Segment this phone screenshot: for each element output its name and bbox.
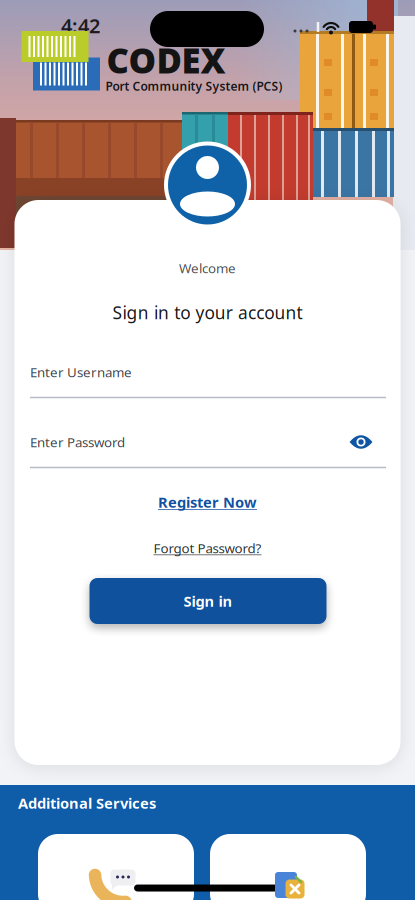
staticText: CODEX	[106, 37, 225, 83]
staticText: Register Now	[158, 492, 257, 512]
button[interactable]: Forgot Password?	[153, 539, 261, 557]
button[interactable]	[38, 834, 194, 900]
staticText: Port Community System (PCS)	[105, 78, 282, 94]
staticText: Welcome	[179, 259, 236, 277]
button[interactable]: Sign in	[89, 578, 326, 624]
button[interactable]: Enter Username	[0, 344, 415, 400]
staticText: Enter Password	[30, 433, 125, 451]
staticText: Sign in to your account	[112, 301, 303, 324]
staticText: Enter Username	[30, 363, 132, 381]
staticText: Sign in	[183, 591, 232, 611]
button[interactable]: Enter Password	[0, 414, 415, 470]
staticText: Additional Services	[18, 793, 156, 813]
button[interactable]: Register Now	[158, 492, 257, 512]
staticText: 4:42	[61, 12, 100, 39]
button[interactable]	[210, 834, 366, 900]
staticText: Forgot Password?	[153, 539, 261, 557]
